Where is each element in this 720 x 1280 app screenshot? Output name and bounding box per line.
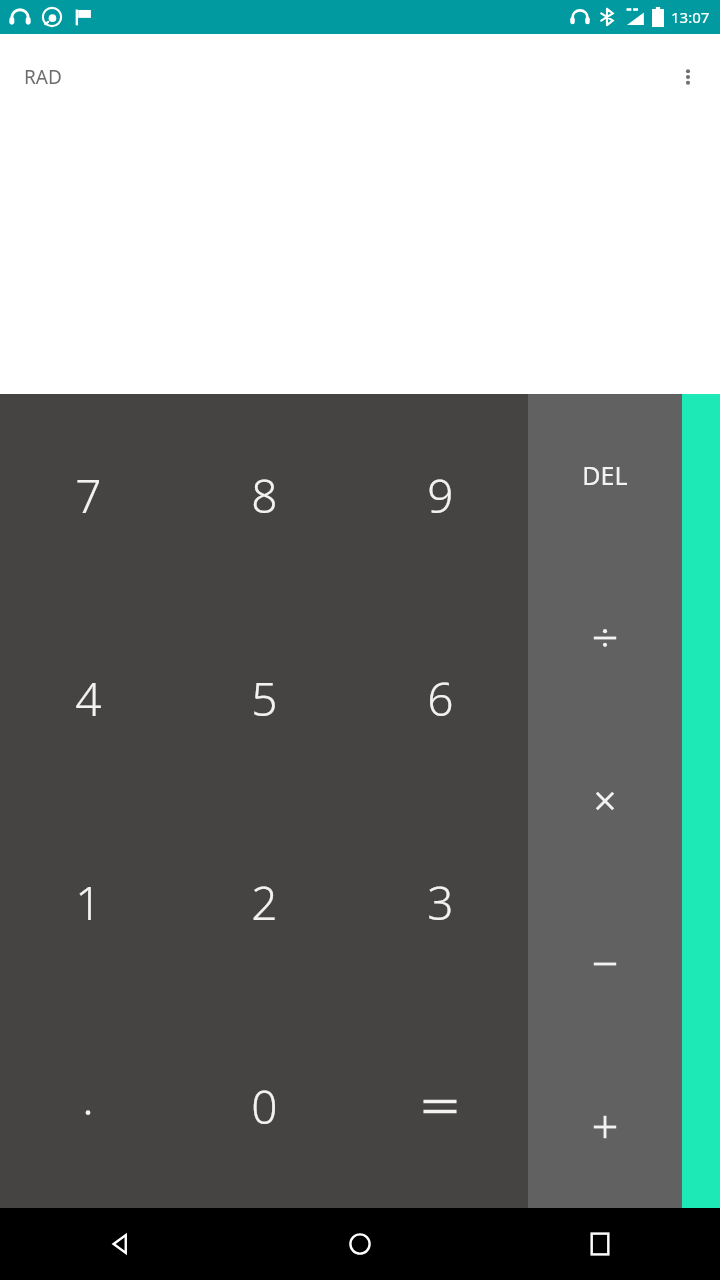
button[interactable]: Multiply — [528, 719, 682, 882]
staticText: 7 — [75, 464, 102, 527]
button[interactable] — [0, 1004, 176, 1208]
staticText: 8 — [251, 464, 278, 527]
staticText: 1 — [75, 871, 102, 934]
button[interactable]: Divide — [528, 556, 682, 719]
button[interactable]: 6 — [352, 597, 528, 800]
button[interactable] — [352, 1004, 528, 1208]
staticText: 13:07 — [671, 7, 710, 27]
button[interactable]: More options — [664, 53, 712, 101]
button[interactable]: Recent apps — [480, 1208, 720, 1280]
button[interactable]: DEL — [528, 394, 682, 556]
button[interactable]: 0 — [176, 1004, 352, 1208]
staticText: 0 — [251, 1075, 278, 1138]
button[interactable]: RAD — [10, 54, 76, 100]
staticText: 4 — [75, 667, 102, 730]
button[interactable]: 5 — [176, 597, 352, 800]
staticText: 3 — [427, 871, 454, 934]
button[interactable]: Add — [528, 1045, 682, 1208]
button[interactable]: Subtract — [528, 882, 682, 1045]
button[interactable]: 4 — [0, 597, 176, 800]
staticText: 9 — [427, 464, 454, 527]
button[interactable]: Home — [240, 1208, 480, 1280]
button[interactable]: Back — [0, 1208, 240, 1280]
button[interactable]: 1 — [0, 800, 176, 1004]
staticText: 5 — [251, 667, 278, 730]
button[interactable]: 8 — [176, 394, 352, 597]
button[interactable]: 3 — [352, 800, 528, 1004]
staticText: 6 — [427, 667, 454, 730]
staticText: DEL — [582, 458, 628, 492]
button[interactable]: 7 — [0, 394, 176, 597]
button[interactable]: 9 — [352, 394, 528, 597]
staticText: 2 — [251, 871, 278, 934]
staticText: RAD — [24, 64, 62, 90]
button[interactable]: 2 — [176, 800, 352, 1004]
